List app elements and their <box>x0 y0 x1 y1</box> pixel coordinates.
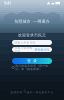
staticText: 请输入手机号码 <box>15 41 36 44</box>
staticText: 获取验证码 <box>34 48 49 51</box>
staticText: 欢迎登录市民云 <box>18 33 46 38</box>
button[interactable]: 我已阅读并同意《用户协议》和《隐私政策》 <box>12 66 52 69</box>
staticText: 智慧城市 · 一网通办 <box>14 19 49 24</box>
staticText: 登 录 <box>27 58 37 63</box>
staticText: 我已阅读并同意《用户协议》和《隐私政策》 <box>15 64 48 71</box>
staticText: 请输入短信验证码 <box>15 46 33 53</box>
staticText: 版权所有 © 城市一体化服务平台 <box>10 90 53 94</box>
button[interactable]: 登 录 <box>12 58 52 64</box>
staticText: 9:41 <box>4 0 11 6</box>
